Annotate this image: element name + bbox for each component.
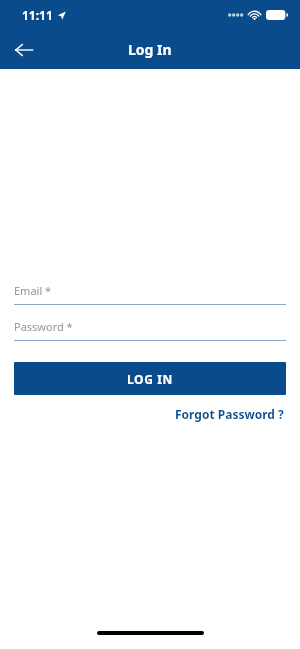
staticText: LOG IN — [127, 371, 173, 387]
staticText: Log In — [128, 40, 172, 59]
staticText: 11:11 — [22, 7, 53, 23]
button[interactable]: Password * — [0, 316, 300, 341]
button[interactable]: Email * — [0, 280, 300, 305]
staticText: Forgot Password ? — [175, 406, 284, 422]
button[interactable]: LOG IN — [14, 362, 286, 395]
staticText: Email * — [14, 283, 52, 298]
button[interactable]: Back — [8, 34, 40, 66]
button[interactable]: Forgot Password ? — [173, 403, 286, 425]
staticText: Password * — [14, 319, 73, 334]
